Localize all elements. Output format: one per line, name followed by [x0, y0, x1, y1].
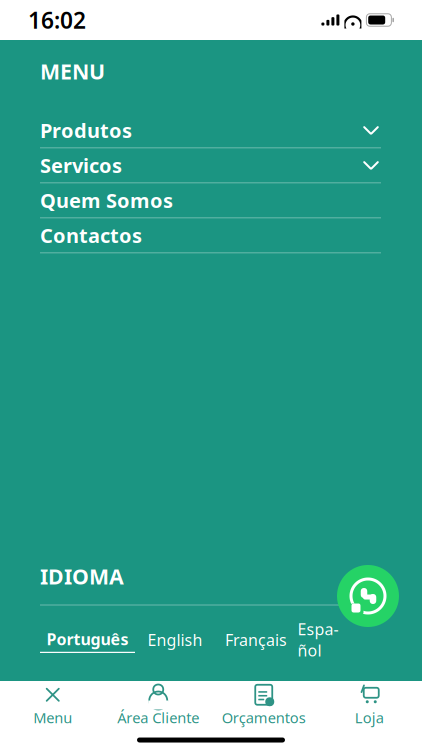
button[interactable]: Français — [215, 629, 297, 652]
button[interactable]: Español — [297, 618, 339, 663]
button[interactable]: Orçamentos — [211, 681, 316, 729]
button[interactable]: Servicos — [40, 148, 381, 183]
staticText: Português — [46, 628, 128, 650]
staticText: Quem Somos — [40, 187, 173, 214]
staticText: Menu — [33, 708, 72, 727]
button[interactable]: Loja — [316, 681, 422, 729]
staticText: Orçamentos — [222, 708, 306, 727]
button[interactable]: Quem Somos — [40, 183, 381, 218]
staticText: Français — [225, 629, 287, 650]
staticText: Produtos — [40, 117, 132, 144]
staticText: Español — [297, 618, 338, 661]
staticText: IDIOMA — [40, 562, 124, 590]
button[interactable]: Português — [40, 628, 135, 653]
staticText: 16:02 — [28, 5, 86, 35]
staticText: Área Cliente — [117, 708, 199, 727]
button[interactable]: Menu — [0, 681, 105, 729]
staticText: MENU — [40, 57, 105, 85]
staticText: English — [147, 629, 202, 650]
button[interactable]: Produtos — [40, 113, 381, 148]
staticText: Servicos — [40, 152, 122, 179]
button[interactable]: Área Cliente — [105, 681, 211, 729]
staticText: Loja — [355, 708, 384, 727]
button[interactable]: WhatsApp — [337, 565, 399, 627]
button[interactable]: Contactos — [40, 218, 381, 253]
button[interactable]: English — [135, 629, 215, 652]
staticText: Contactos — [40, 222, 142, 249]
